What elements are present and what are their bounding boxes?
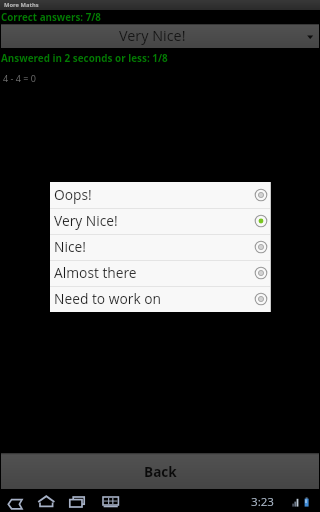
staticText: More Maths [4,1,39,9]
button[interactable]: Nice! [50,234,271,260]
staticText: Back [144,462,177,481]
staticText: Almost there [54,263,137,282]
button[interactable]: Keyboard [102,496,121,508]
staticText: Very Nice! [119,26,186,46]
button[interactable]: Back [6,496,24,508]
staticText: 4 - 4 = 0 [3,72,36,84]
staticText: Oops! [54,185,92,204]
button[interactable]: Need to work on [50,286,271,312]
button[interactable]: Very Nice! [1,24,319,48]
staticText: 3:23 [251,494,274,510]
staticText: Correct answers: 7/8 [1,11,101,24]
staticText: Need to work on [54,289,162,308]
button[interactable]: Back [1,453,319,489]
button[interactable]: Recent apps [69,496,87,508]
button[interactable]: Almost there [50,260,271,286]
button[interactable]: Very Nice! [50,208,271,234]
button[interactable]: Oops! [50,182,271,208]
staticText: Very Nice! [54,211,118,230]
staticText: Answered in 2 seconds or less: 1/8 [1,51,168,64]
button[interactable]: Home [37,495,57,508]
staticText: Nice! [54,237,86,256]
